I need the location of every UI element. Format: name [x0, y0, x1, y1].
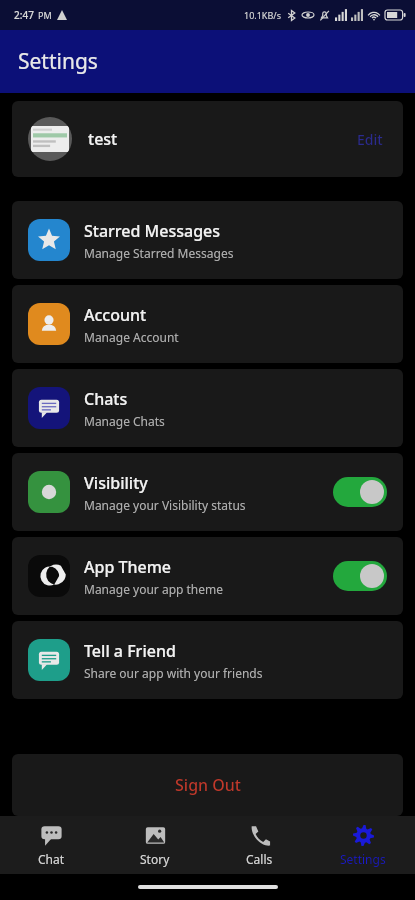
- button[interactable]: Toggle Visibility: [333, 477, 387, 507]
- button[interactable]: test: [12, 101, 403, 177]
- button[interactable]: App Theme: [12, 537, 403, 615]
- staticText: Tell a Friend: [84, 640, 176, 662]
- staticText: Manage your Visibility status: [84, 497, 246, 513]
- staticText: Manage your app theme: [84, 581, 224, 597]
- staticText: Chats: [84, 388, 128, 410]
- staticText: Story: [140, 851, 170, 867]
- staticText: Settings: [340, 851, 386, 867]
- staticText: 2:47: [14, 8, 34, 22]
- staticText: Sign Out: [175, 774, 241, 796]
- staticText: Share our app with your friends: [84, 665, 263, 681]
- staticText: Edit: [357, 130, 383, 149]
- staticText: Chat: [38, 851, 65, 867]
- staticText: App Theme: [84, 556, 172, 578]
- button[interactable]: Visibility: [12, 453, 403, 531]
- staticText: Manage Chats: [84, 413, 165, 429]
- staticText: Manage Account: [84, 329, 179, 345]
- staticText: Account: [84, 304, 147, 326]
- staticText: Visibility: [84, 472, 148, 494]
- staticText: Calls: [246, 851, 273, 867]
- staticText: 10.1KB/s: [244, 9, 281, 21]
- button[interactable]: Account: [12, 285, 403, 363]
- button[interactable]: Sign Out: [12, 754, 403, 816]
- button[interactable]: Settings: [311, 816, 415, 874]
- button[interactable]: Starred Messages: [12, 201, 403, 279]
- button[interactable]: Edit: [353, 126, 387, 153]
- button[interactable]: Calls: [207, 816, 311, 874]
- staticText: PM: [38, 9, 52, 21]
- button[interactable]: Chat: [0, 816, 103, 874]
- staticText: Starred Messages: [84, 220, 221, 242]
- staticText: Manage Starred Messages: [84, 245, 234, 261]
- button[interactable]: Tell a Friend: [12, 621, 403, 699]
- staticText: Settings: [18, 47, 98, 76]
- button[interactable]: Story: [103, 816, 207, 874]
- button[interactable]: Toggle App Theme: [333, 561, 387, 591]
- staticText: test: [88, 128, 118, 150]
- button[interactable]: Chats: [12, 369, 403, 447]
